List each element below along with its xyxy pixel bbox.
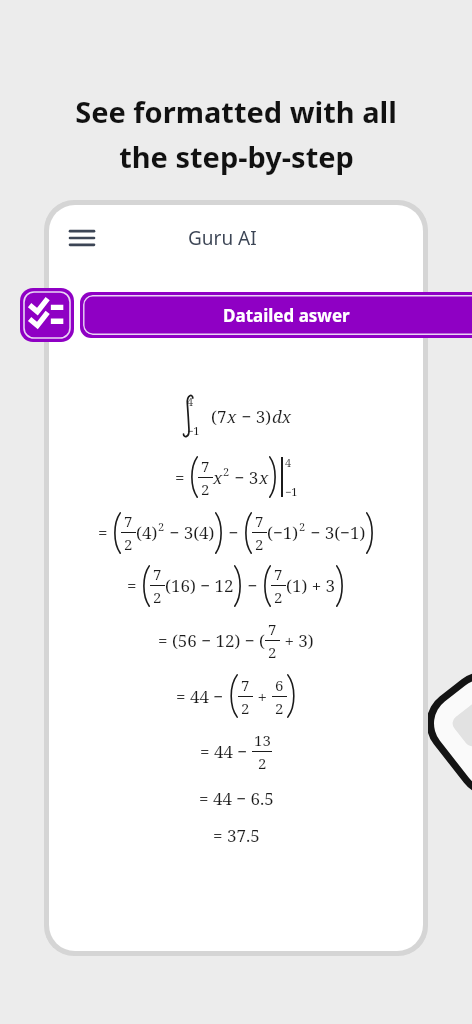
staticText: (1) + 3	[286, 574, 336, 597]
staticText: 2	[274, 587, 283, 607]
staticText: −1	[187, 423, 200, 438]
staticText: 7	[241, 675, 250, 695]
staticText: 7	[268, 619, 277, 639]
staticText: 7	[201, 456, 210, 476]
staticText: 2	[201, 479, 210, 499]
staticText: 7	[124, 511, 133, 531]
staticText: 6	[275, 675, 284, 695]
staticText: 13	[254, 730, 271, 750]
staticText: 2	[158, 519, 165, 534]
button[interactable]: Menu	[65, 221, 99, 255]
staticText: =	[175, 466, 189, 489]
staticText: 2	[124, 534, 133, 554]
staticText: 2	[275, 698, 284, 718]
staticText: 2	[223, 464, 230, 479]
staticText: the step-by-step	[119, 137, 354, 176]
staticText: x	[213, 466, 223, 489]
staticText: +	[253, 685, 272, 708]
staticText: dx	[272, 405, 292, 428]
staticText: = 44 −	[176, 685, 228, 708]
staticText: =	[98, 521, 112, 544]
staticText: x	[227, 405, 237, 428]
staticText: −1	[285, 484, 298, 499]
staticText: 4	[187, 394, 194, 409]
button[interactable]: Datailed aswer	[83, 295, 472, 335]
staticText: (7	[211, 405, 227, 428]
staticText: (4)	[136, 521, 158, 544]
staticText: −	[243, 574, 262, 597]
staticText: = 44 − 6.5	[199, 787, 274, 810]
staticText: = (56 − 12) − (	[158, 629, 265, 652]
staticText: − 3(4)	[165, 521, 215, 544]
staticText: 7	[255, 511, 264, 531]
staticText: − 3(−1)	[306, 521, 366, 544]
staticText: 2	[153, 587, 162, 607]
staticText: 7	[153, 564, 162, 584]
staticText: Guru AI	[188, 225, 257, 251]
staticText: (16) − 12	[165, 574, 234, 597]
staticText: 2	[241, 698, 250, 718]
staticText: 7	[274, 564, 283, 584]
staticText: x	[259, 466, 269, 489]
staticText: = 37.5	[213, 824, 260, 847]
staticText: See formatted with all	[75, 92, 397, 131]
staticText: Datailed aswer	[223, 304, 350, 327]
staticText: − 3	[230, 466, 259, 489]
staticText: 2	[299, 519, 306, 534]
staticText: =	[127, 574, 141, 597]
button[interactable]: Detailed answer	[23, 291, 71, 339]
staticText: = 44 −	[200, 740, 252, 763]
staticText: 2	[268, 642, 277, 662]
staticText: −	[224, 521, 243, 544]
staticText: − 3)	[237, 405, 272, 428]
staticText: 2	[258, 753, 267, 773]
staticText: + 3)	[280, 629, 314, 652]
staticText: (−1)	[267, 521, 299, 544]
staticText: 4	[285, 455, 292, 470]
staticText: 2	[255, 534, 264, 554]
